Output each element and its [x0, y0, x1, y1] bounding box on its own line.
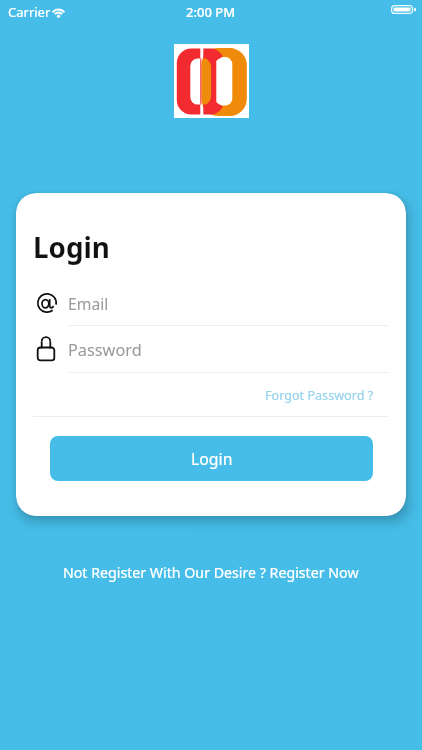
other: Wi-Fi signal	[50, 5, 67, 17]
button[interactable]: Email	[68, 293, 109, 314]
button[interactable]: Not Register With Our Desire ? Register …	[63, 563, 359, 582]
staticText: Email	[68, 293, 109, 314]
staticText: 2:00 PM	[186, 3, 236, 21]
staticText: Forgot Password ?	[265, 387, 374, 404]
other: Password	[36, 336, 56, 362]
button[interactable]: Forgot Password ?	[265, 387, 374, 404]
other: Email address	[36, 292, 58, 314]
staticText: Login	[33, 228, 110, 266]
button[interactable]: Login	[50, 436, 373, 481]
other: Battery full	[391, 5, 417, 14]
button[interactable]: Password	[68, 339, 142, 361]
staticText: Carrier	[8, 3, 51, 21]
staticText: Login	[191, 448, 233, 470]
staticText: Password	[68, 339, 142, 361]
